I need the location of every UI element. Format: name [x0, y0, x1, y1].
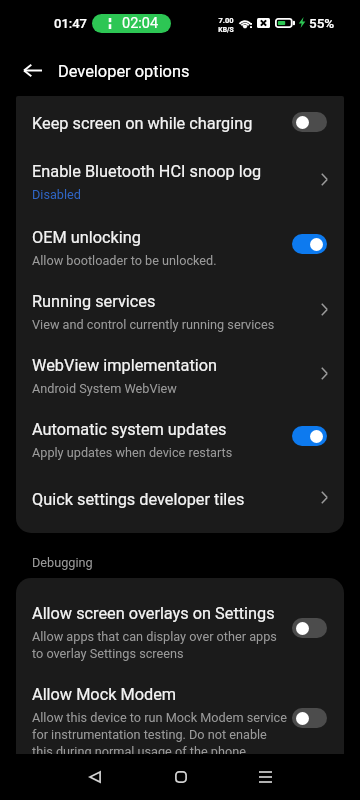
- button[interactable]: Quick settings developer tiles: [16, 473, 344, 522]
- button[interactable]: Recent apps: [242, 754, 289, 800]
- button[interactable]: Running services: [16, 277, 344, 341]
- button[interactable]: Back: [71, 754, 118, 800]
- staticText: 02:04: [122, 15, 159, 32]
- button[interactable]: Automatic system updates: [16, 405, 344, 473]
- button[interactable]: Enable Bluetooth HCI snoop log: [16, 147, 344, 213]
- staticText: OEM unlocking: [32, 225, 141, 248]
- staticText: Allow Mock Modem: [32, 682, 177, 705]
- staticText: Automatic system updates: [32, 417, 227, 440]
- button[interactable]: Switch on: [292, 426, 327, 446]
- button[interactable]: Allow screen overlays on Settings: [16, 589, 344, 670]
- staticText: Apply updates when device restarts: [32, 443, 233, 460]
- staticText: Allow screen overlays on Settings: [32, 601, 275, 624]
- staticText: 01:47: [54, 16, 88, 31]
- staticText: Quick settings developer tiles: [32, 487, 245, 510]
- button[interactable]: Switch off: [292, 112, 327, 132]
- staticText: Allow bootloader to be unlocked.: [32, 251, 217, 268]
- staticText: Keep screen on while charging: [32, 111, 253, 134]
- button[interactable]: Switch on: [292, 234, 327, 254]
- staticText: View and control currently running servi…: [32, 315, 275, 332]
- staticText: 7.00: [218, 16, 234, 25]
- button[interactable]: Navigate up: [9, 47, 55, 93]
- staticText: Running services: [32, 289, 156, 312]
- staticText: Allow apps that can display over other a…: [32, 627, 288, 661]
- button[interactable]: Switch off: [292, 618, 327, 638]
- staticText: Allow this device to run Mock Modem serv…: [32, 708, 288, 759]
- staticText: Enable Bluetooth HCI snoop log: [32, 159, 262, 182]
- staticText: WebView implementation: [32, 353, 218, 376]
- staticText: KB/S: [218, 26, 234, 34]
- button[interactable]: Switch off: [292, 708, 327, 728]
- button[interactable]: Allow Mock Modem: [16, 670, 344, 768]
- button[interactable]: Keep screen on while charging: [16, 99, 344, 147]
- staticText: Disabled: [32, 185, 81, 202]
- staticText: Debugging: [32, 555, 93, 570]
- staticText: 55%: [309, 15, 335, 31]
- button[interactable]: WebView implementation: [16, 341, 344, 405]
- staticText: Developer options: [58, 62, 190, 81]
- staticText: Android System WebView: [32, 379, 177, 396]
- button[interactable]: Home: [157, 754, 204, 800]
- button[interactable]: OEM unlocking: [16, 213, 344, 277]
